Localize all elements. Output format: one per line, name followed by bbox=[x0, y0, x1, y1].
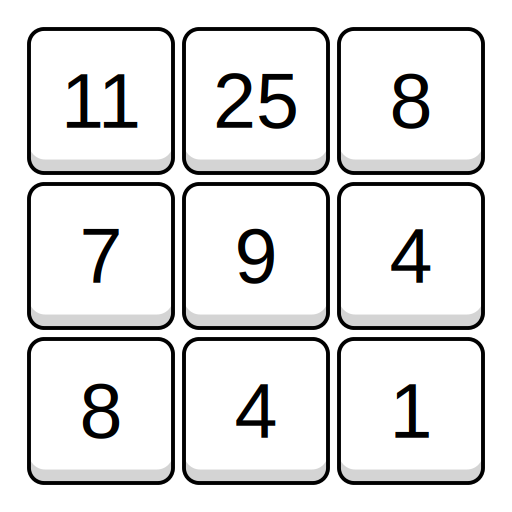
button[interactable]: 11 bbox=[29, 29, 173, 173]
staticText: 4 bbox=[234, 368, 277, 454]
button[interactable]: 7 bbox=[29, 184, 173, 328]
staticText: 4 bbox=[389, 213, 432, 299]
staticText: 9 bbox=[234, 213, 277, 299]
button[interactable]: 1 bbox=[339, 339, 483, 483]
staticText: 25 bbox=[213, 58, 299, 144]
staticText: 11 bbox=[61, 58, 141, 144]
button[interactable]: 9 bbox=[184, 184, 328, 328]
button[interactable]: 4 bbox=[339, 184, 483, 328]
staticText: 8 bbox=[79, 368, 122, 454]
button[interactable]: 8 bbox=[29, 339, 173, 483]
staticText: 8 bbox=[389, 58, 432, 144]
button[interactable]: 8 bbox=[339, 29, 483, 173]
button[interactable]: 4 bbox=[184, 339, 328, 483]
staticText: 7 bbox=[79, 213, 122, 299]
staticText: 1 bbox=[389, 368, 432, 454]
button[interactable]: 25 bbox=[184, 29, 328, 173]
